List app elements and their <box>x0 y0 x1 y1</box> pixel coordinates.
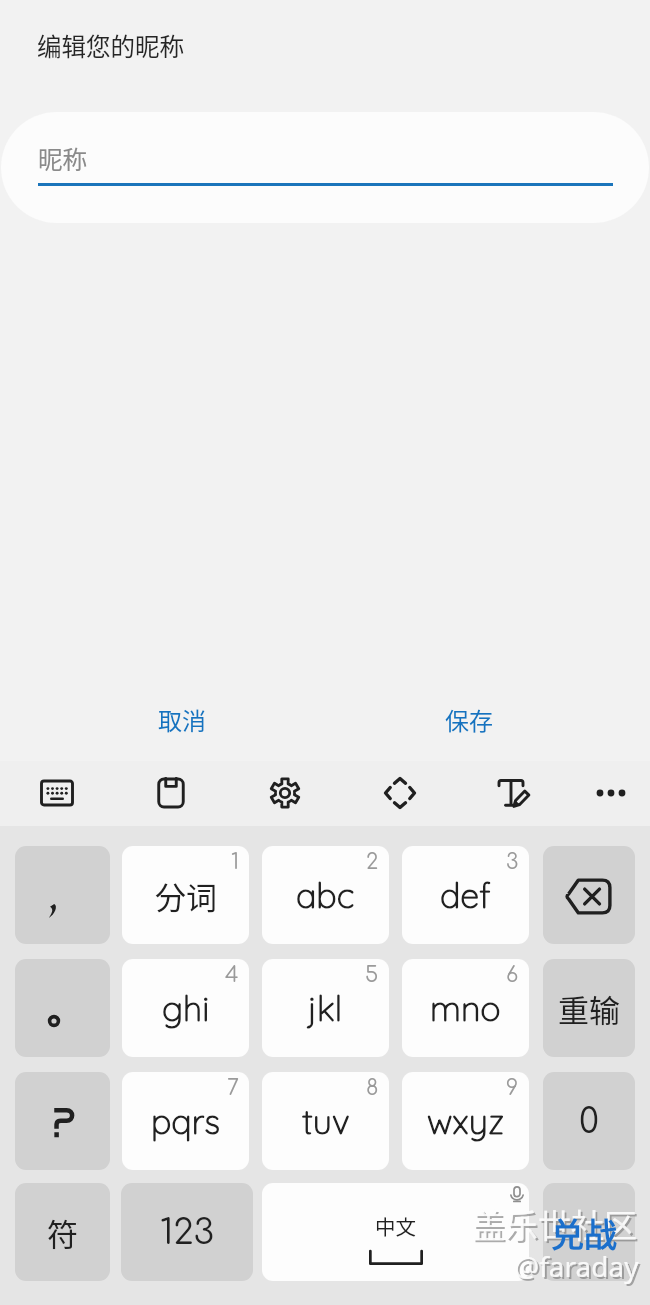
staticText: 1 <box>231 850 239 873</box>
button[interactable]: 取消 <box>139 693 224 745</box>
button[interactable]: Move keyboard <box>372 765 428 821</box>
button[interactable]: 中文 <box>262 1183 529 1281</box>
staticText: 4 <box>225 963 239 986</box>
button[interactable]: Handwriting <box>486 765 542 821</box>
staticText: 8 <box>366 1076 379 1099</box>
button[interactable]: abc <box>262 846 389 944</box>
other: Voice input <box>508 1186 526 1204</box>
button[interactable]: Clipboard <box>143 765 199 821</box>
button[interactable] <box>543 1183 635 1281</box>
staticText: 0 <box>579 1102 599 1141</box>
button[interactable]: jkl <box>262 959 389 1057</box>
staticText: 重输 <box>558 986 620 1031</box>
other: Comma <box>48 904 58 918</box>
staticText: 符 <box>47 1210 78 1255</box>
button[interactable]: 保存 <box>426 693 511 745</box>
staticText: tuv <box>302 1100 350 1143</box>
button[interactable]: tuv <box>262 1072 389 1170</box>
staticText: 123 <box>160 1213 215 1252</box>
other: Full stop <box>47 1014 61 1028</box>
button[interactable]: 分词 <box>122 846 249 944</box>
staticText: 昵称 <box>38 141 87 176</box>
staticText: 3 <box>506 850 519 873</box>
staticText: 6 <box>506 963 519 986</box>
staticText: 5 <box>365 963 379 986</box>
staticText: 兑战 <box>551 1209 617 1257</box>
staticText: jkl <box>308 987 343 1030</box>
staticText: abc <box>296 874 355 917</box>
button[interactable]: Settings <box>257 765 313 821</box>
staticText: 编辑您的昵称 <box>37 28 184 63</box>
staticText: 盖乐世社区 <box>474 1202 639 1250</box>
staticText: def <box>440 874 491 917</box>
button[interactable]: 昵称 <box>1 112 649 223</box>
button[interactable]: Backspace <box>543 846 635 944</box>
staticText: 分词 <box>155 873 217 918</box>
button[interactable]: 0 <box>543 1072 635 1170</box>
other: Backspace <box>564 878 612 915</box>
staticText: 9 <box>506 1076 519 1099</box>
button[interactable]: ghi <box>122 959 249 1057</box>
button[interactable]: mno <box>402 959 529 1057</box>
staticText: @faraday <box>514 1247 639 1285</box>
staticText: 2 <box>366 850 379 873</box>
button[interactable]: More options <box>583 765 639 821</box>
button[interactable]: Keyboard <box>29 765 85 821</box>
staticText: pqrs <box>151 1100 221 1143</box>
button[interactable]: pqrs <box>122 1072 249 1170</box>
button[interactable]: Question mark <box>15 1072 110 1170</box>
button[interactable]: 重输 <box>543 959 635 1057</box>
staticText: 中文 <box>375 1211 416 1241</box>
staticText: 取消 <box>158 702 206 737</box>
staticText: 盖乐世社区 <box>472 1200 637 1248</box>
button[interactable]: 符 <box>15 1183 110 1281</box>
other: Question mark <box>52 1108 74 1138</box>
button[interactable]: wxyz <box>402 1072 529 1170</box>
staticText: wxyz <box>427 1100 505 1143</box>
button[interactable]: Full stop <box>15 959 110 1057</box>
staticText: mno <box>430 987 501 1030</box>
button[interactable]: Comma <box>15 846 110 944</box>
staticText: @faraday <box>516 1249 641 1287</box>
button[interactable]: def <box>402 846 529 944</box>
button[interactable]: 123 <box>121 1183 253 1281</box>
staticText: 7 <box>227 1076 239 1099</box>
staticText: 保存 <box>445 702 493 737</box>
staticText: ghi <box>162 987 210 1030</box>
